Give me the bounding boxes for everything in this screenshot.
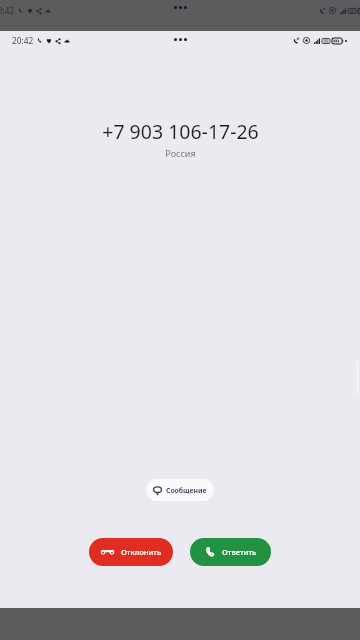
staticText: Отклонить bbox=[121, 547, 162, 557]
staticText: 20:42 bbox=[0, 5, 15, 16]
button[interactable]: Ответить bbox=[190, 538, 271, 566]
button[interactable]: Сообщение bbox=[146, 479, 214, 501]
button[interactable]: Отклонить bbox=[89, 538, 173, 566]
staticText: Ответить bbox=[222, 547, 257, 557]
staticText: Россия bbox=[165, 147, 196, 159]
staticText: +7 903 106-17-26 bbox=[102, 118, 259, 145]
staticText: 20:42 bbox=[12, 35, 34, 46]
staticText: Сообщение bbox=[166, 486, 207, 495]
